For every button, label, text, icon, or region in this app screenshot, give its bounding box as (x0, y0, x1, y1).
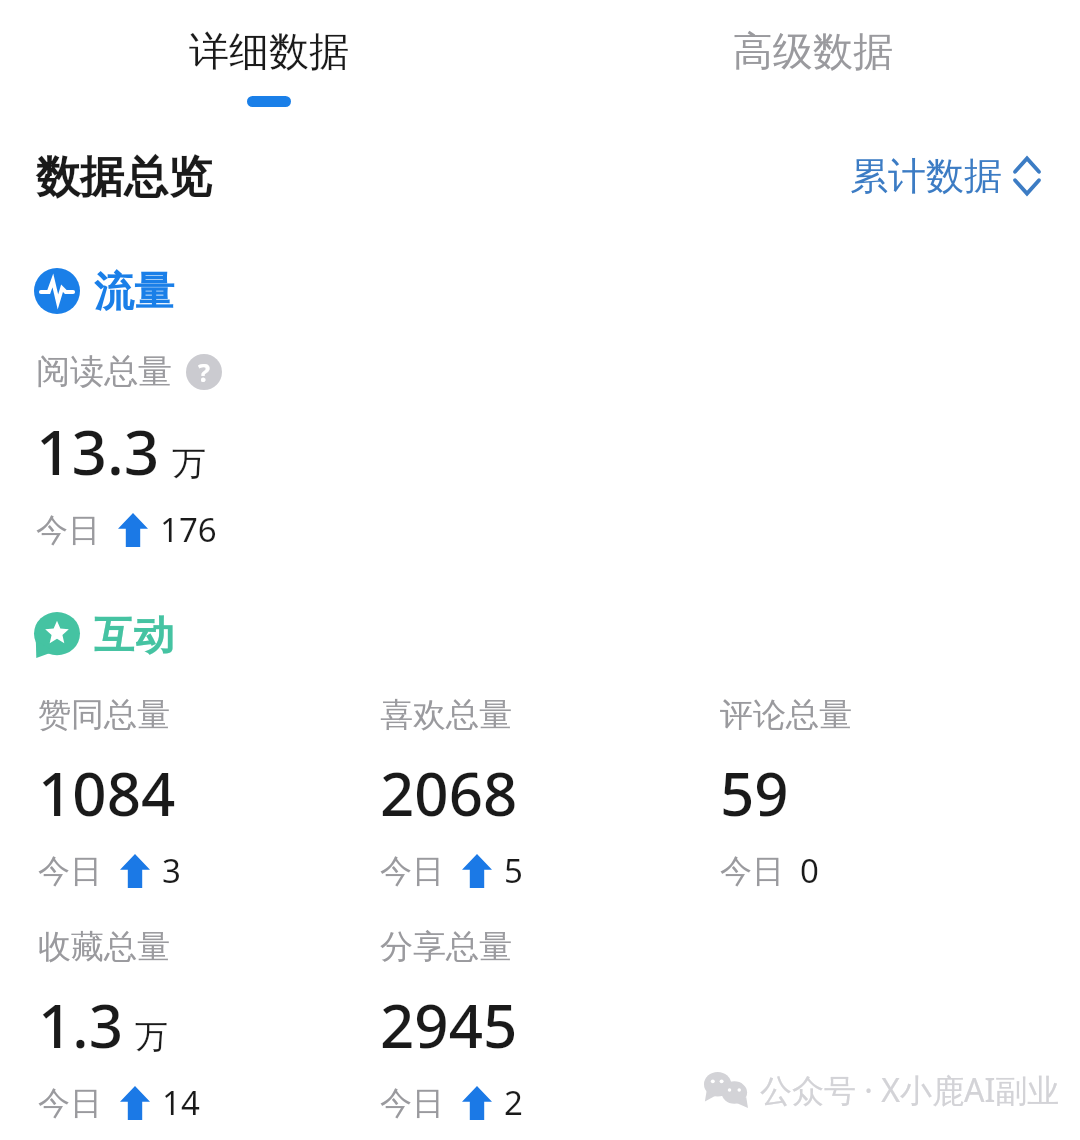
button[interactable]: 详细数据 (128, 26, 410, 107)
staticText: 公众号 · X小鹿AI副业 (760, 1068, 1060, 1112)
staticText: 数据总览 (36, 150, 212, 205)
staticText: 13.3 (36, 409, 160, 493)
staticText: 详细数据 (189, 26, 349, 76)
button[interactable]: 分享总量 (380, 926, 710, 1125)
button[interactable]: 评论总量 (720, 694, 1050, 893)
staticText: 1084 (38, 752, 176, 834)
staticText: 今日 (720, 851, 784, 891)
staticText: 14 (162, 1080, 200, 1125)
staticText: ? (198, 355, 210, 389)
button[interactable]: Interaction (34, 610, 174, 660)
staticText: 今日 (38, 851, 102, 891)
button[interactable]: 阅读总量 (36, 350, 436, 552)
button[interactable]: Help (186, 354, 222, 390)
button[interactable]: 赞同总量 (38, 694, 368, 893)
other: WeChat (704, 1072, 748, 1108)
other: Interaction (34, 612, 80, 658)
button[interactable]: Traffic (34, 266, 174, 316)
staticText: 收藏总量 (38, 926, 170, 968)
staticText: 1.3 (38, 984, 123, 1066)
staticText: 今日 (38, 1083, 102, 1123)
staticText: 今日 (380, 851, 444, 891)
button[interactable]: 喜欢总量 (380, 694, 710, 893)
staticText: 2068 (380, 752, 518, 834)
staticText: 阅读总量 (36, 350, 172, 393)
staticText: 2945 (380, 984, 518, 1066)
button[interactable]: 收藏总量 (38, 926, 368, 1125)
staticText: 流量 (94, 266, 174, 316)
staticText: 高级数据 (733, 26, 893, 76)
staticText: 0 (800, 848, 819, 893)
other: Traffic (34, 268, 80, 314)
staticText: 互动 (94, 610, 174, 660)
staticText: 分享总量 (380, 926, 512, 968)
staticText: 评论总量 (720, 694, 852, 736)
button[interactable]: 累计数据 (850, 152, 1042, 200)
button[interactable]: 高级数据 (672, 26, 954, 86)
staticText: 赞同总量 (38, 694, 170, 736)
staticText: 今日 (380, 1083, 444, 1123)
staticText: 59 (720, 752, 789, 834)
staticText: 5 (504, 848, 523, 893)
staticText: 累计数据 (850, 152, 1002, 200)
staticText: 万 (135, 1016, 168, 1058)
staticText: 万 (172, 442, 206, 485)
staticText: 176 (160, 507, 217, 552)
staticText: 3 (162, 848, 181, 893)
staticText: 喜欢总量 (380, 694, 512, 736)
staticText: 2 (504, 1080, 523, 1125)
staticText: 今日 (36, 510, 100, 550)
